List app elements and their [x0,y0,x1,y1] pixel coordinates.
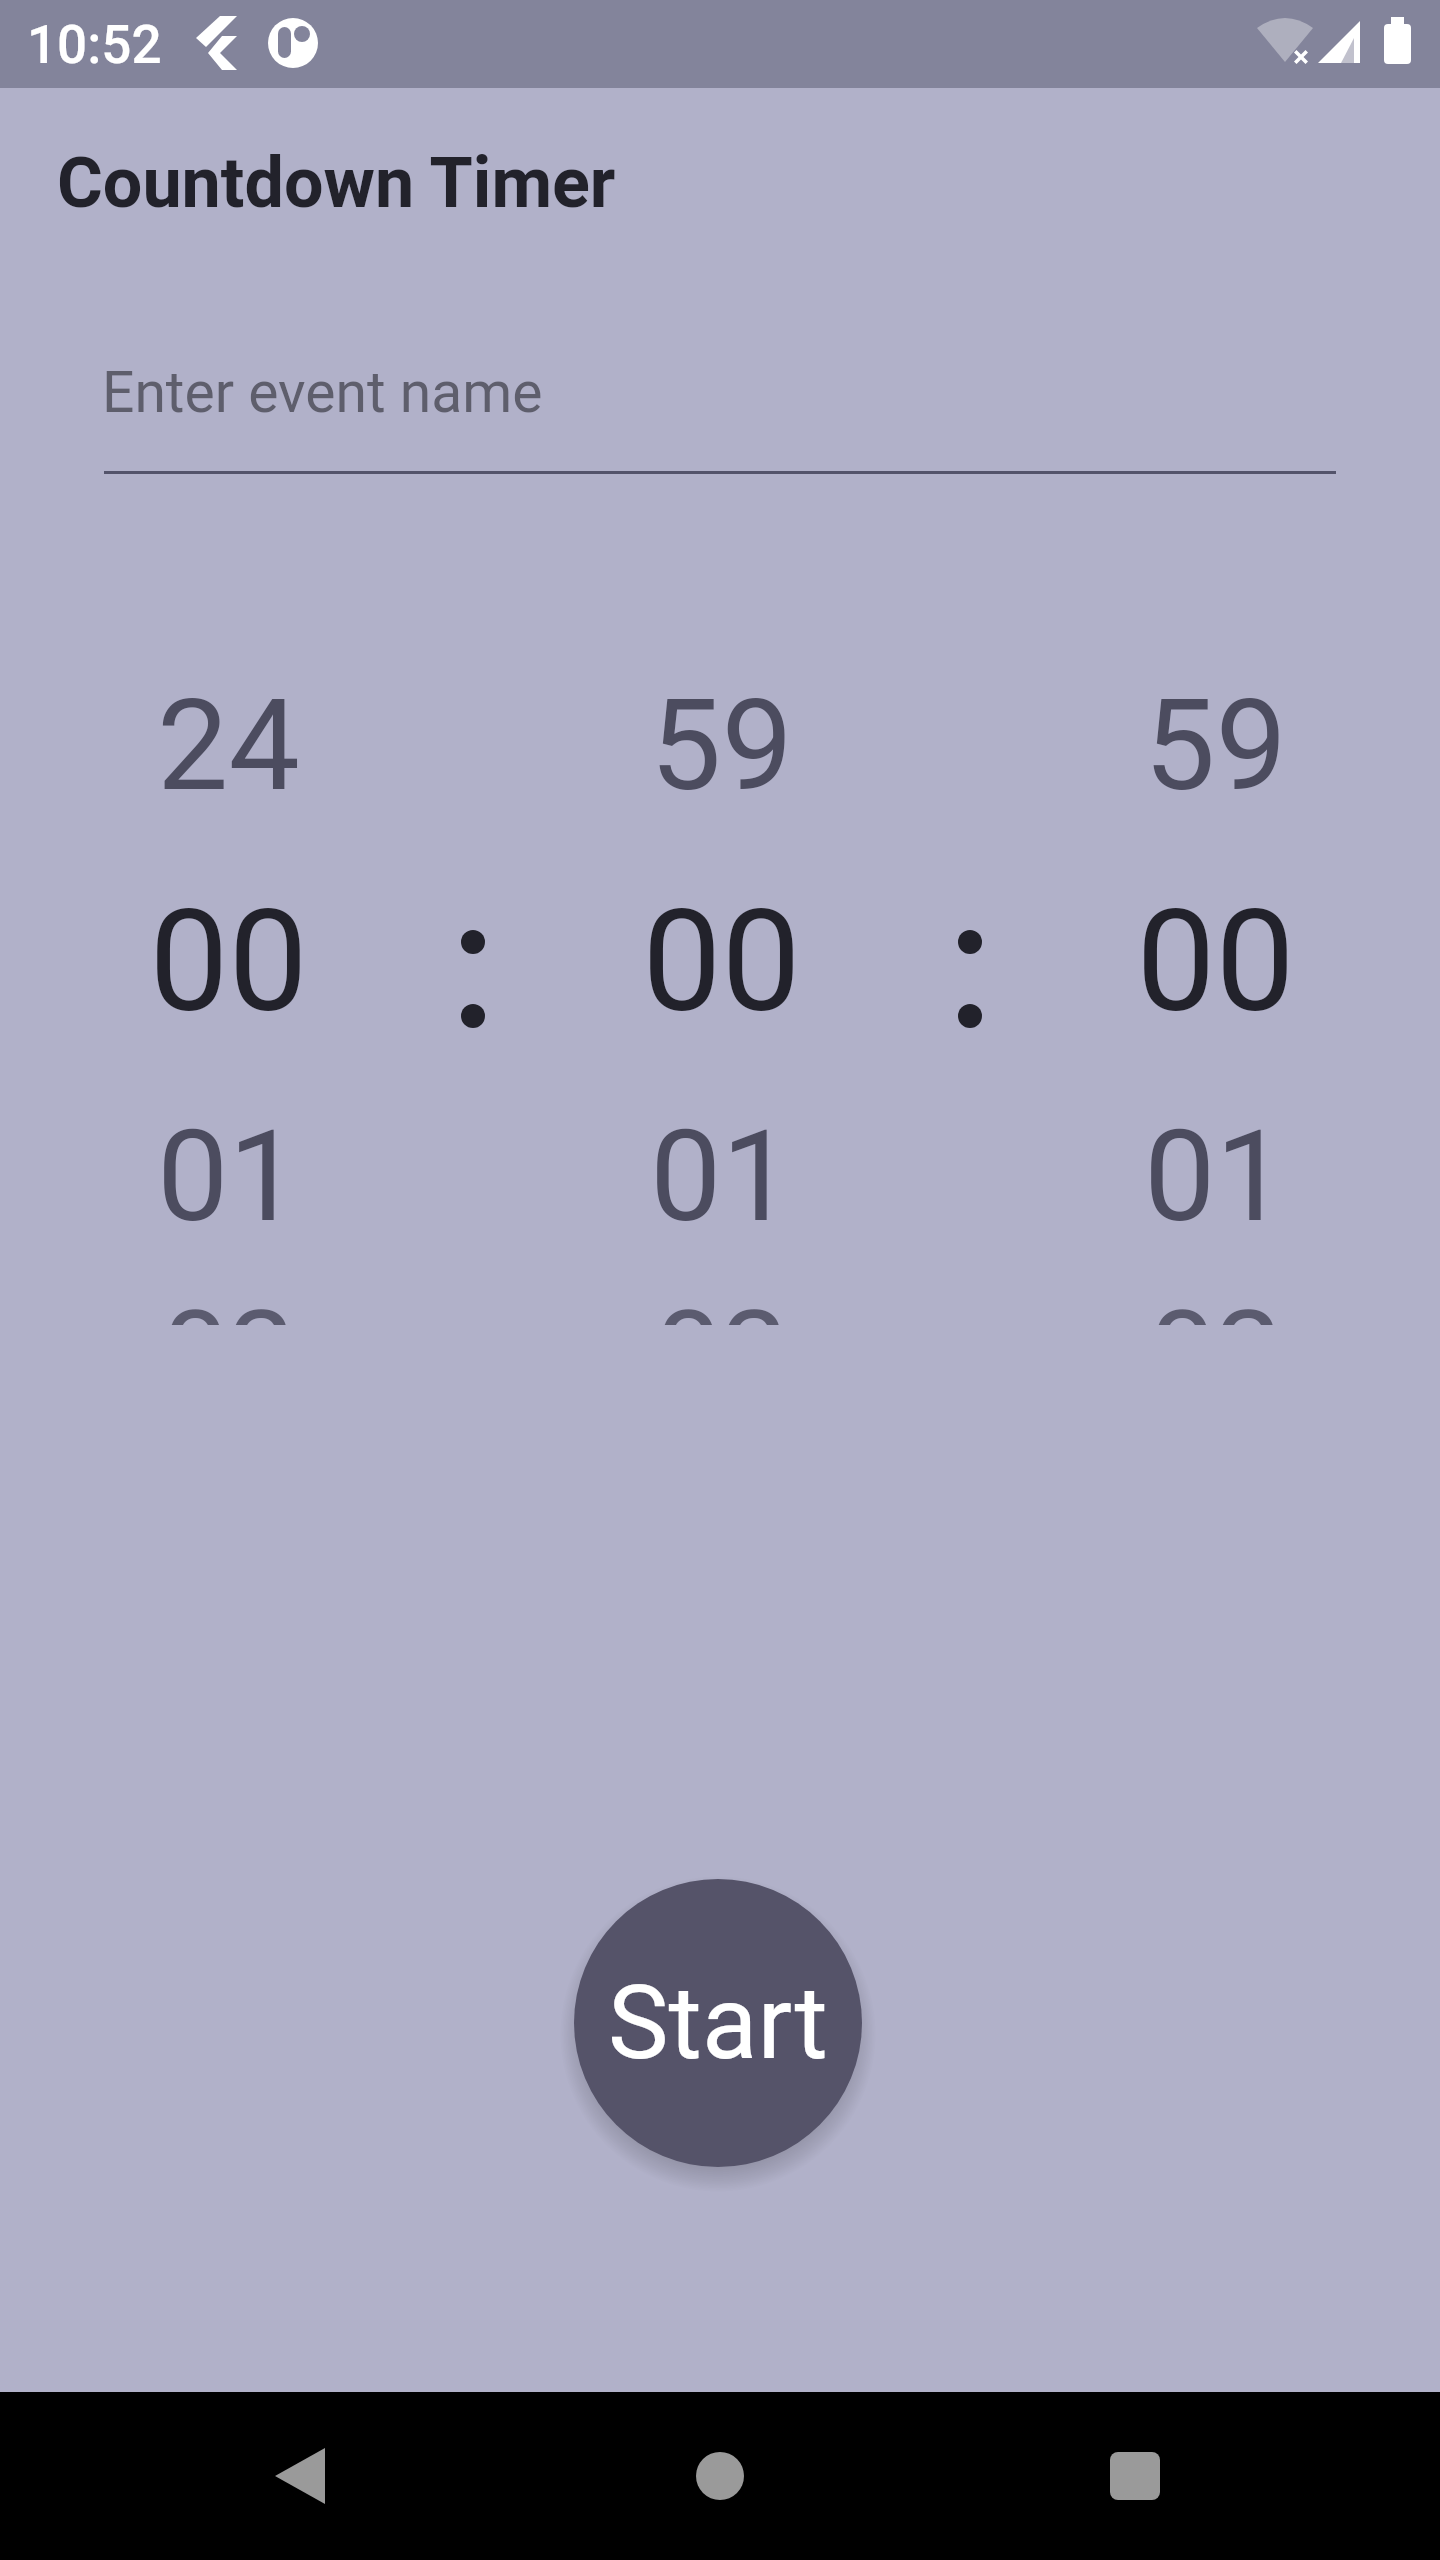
staticText: Countdown Timer [57,142,616,224]
staticText: Start [608,1963,828,2083]
button[interactable] [1065,585,1365,1325]
staticText: 01 [1144,1102,1287,1251]
staticText: 24 [157,671,300,820]
button[interactable] [1085,2426,1185,2526]
button[interactable] [104,340,1336,474]
button[interactable] [571,585,871,1325]
staticText: 02 [162,1286,295,1424]
staticText: 00 [149,879,308,1044]
staticText: 00 [642,879,801,1044]
staticText: 59 [650,671,793,820]
staticText: 02 [1149,1286,1282,1424]
staticText: 01 [157,1102,300,1251]
staticText: 00 [1136,879,1295,1044]
button[interactable] [670,2426,770,2526]
button[interactable] [78,585,378,1325]
staticText: 10:52 [27,14,162,76]
staticText: 01 [650,1102,793,1251]
staticText: 59 [1144,671,1287,820]
button[interactable]: Start [574,1879,862,2167]
staticText: Enter event name [102,359,543,426]
button[interactable] [250,2426,350,2526]
staticText: 02 [655,1286,788,1424]
